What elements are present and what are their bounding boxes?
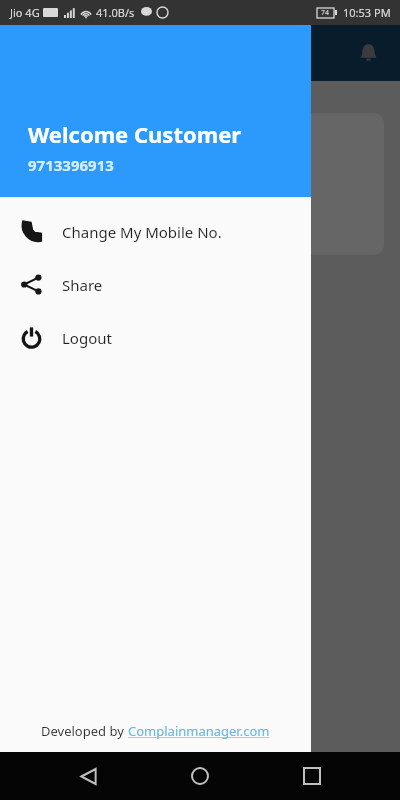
button[interactable]: Back: [64, 752, 112, 800]
staticText: Developed by: [41, 722, 128, 740]
staticText: Change My Mobile No.: [62, 222, 222, 242]
staticText: 74: [321, 8, 330, 18]
button[interactable]: Change My Mobile No.: [0, 205, 311, 258]
button[interactable]: Notifications: [346, 31, 390, 75]
button[interactable]: Share: [0, 258, 311, 311]
button[interactable]: Complainmanager.com: [128, 722, 270, 740]
staticText: Welcome Customer: [28, 119, 242, 149]
staticText: 9713396913: [28, 155, 114, 175]
button[interactable]: Recents: [288, 752, 336, 800]
staticText: 10:53 PM: [343, 5, 391, 20]
staticText: Share: [62, 275, 103, 295]
button[interactable]: Logout: [0, 311, 311, 364]
staticText: Logout: [62, 328, 112, 348]
button[interactable]: Home: [176, 752, 224, 800]
staticText: 41.0B/s: [96, 5, 135, 20]
staticText: Jio 4G: [10, 5, 40, 20]
staticText: Complainmanager.com: [128, 722, 270, 740]
